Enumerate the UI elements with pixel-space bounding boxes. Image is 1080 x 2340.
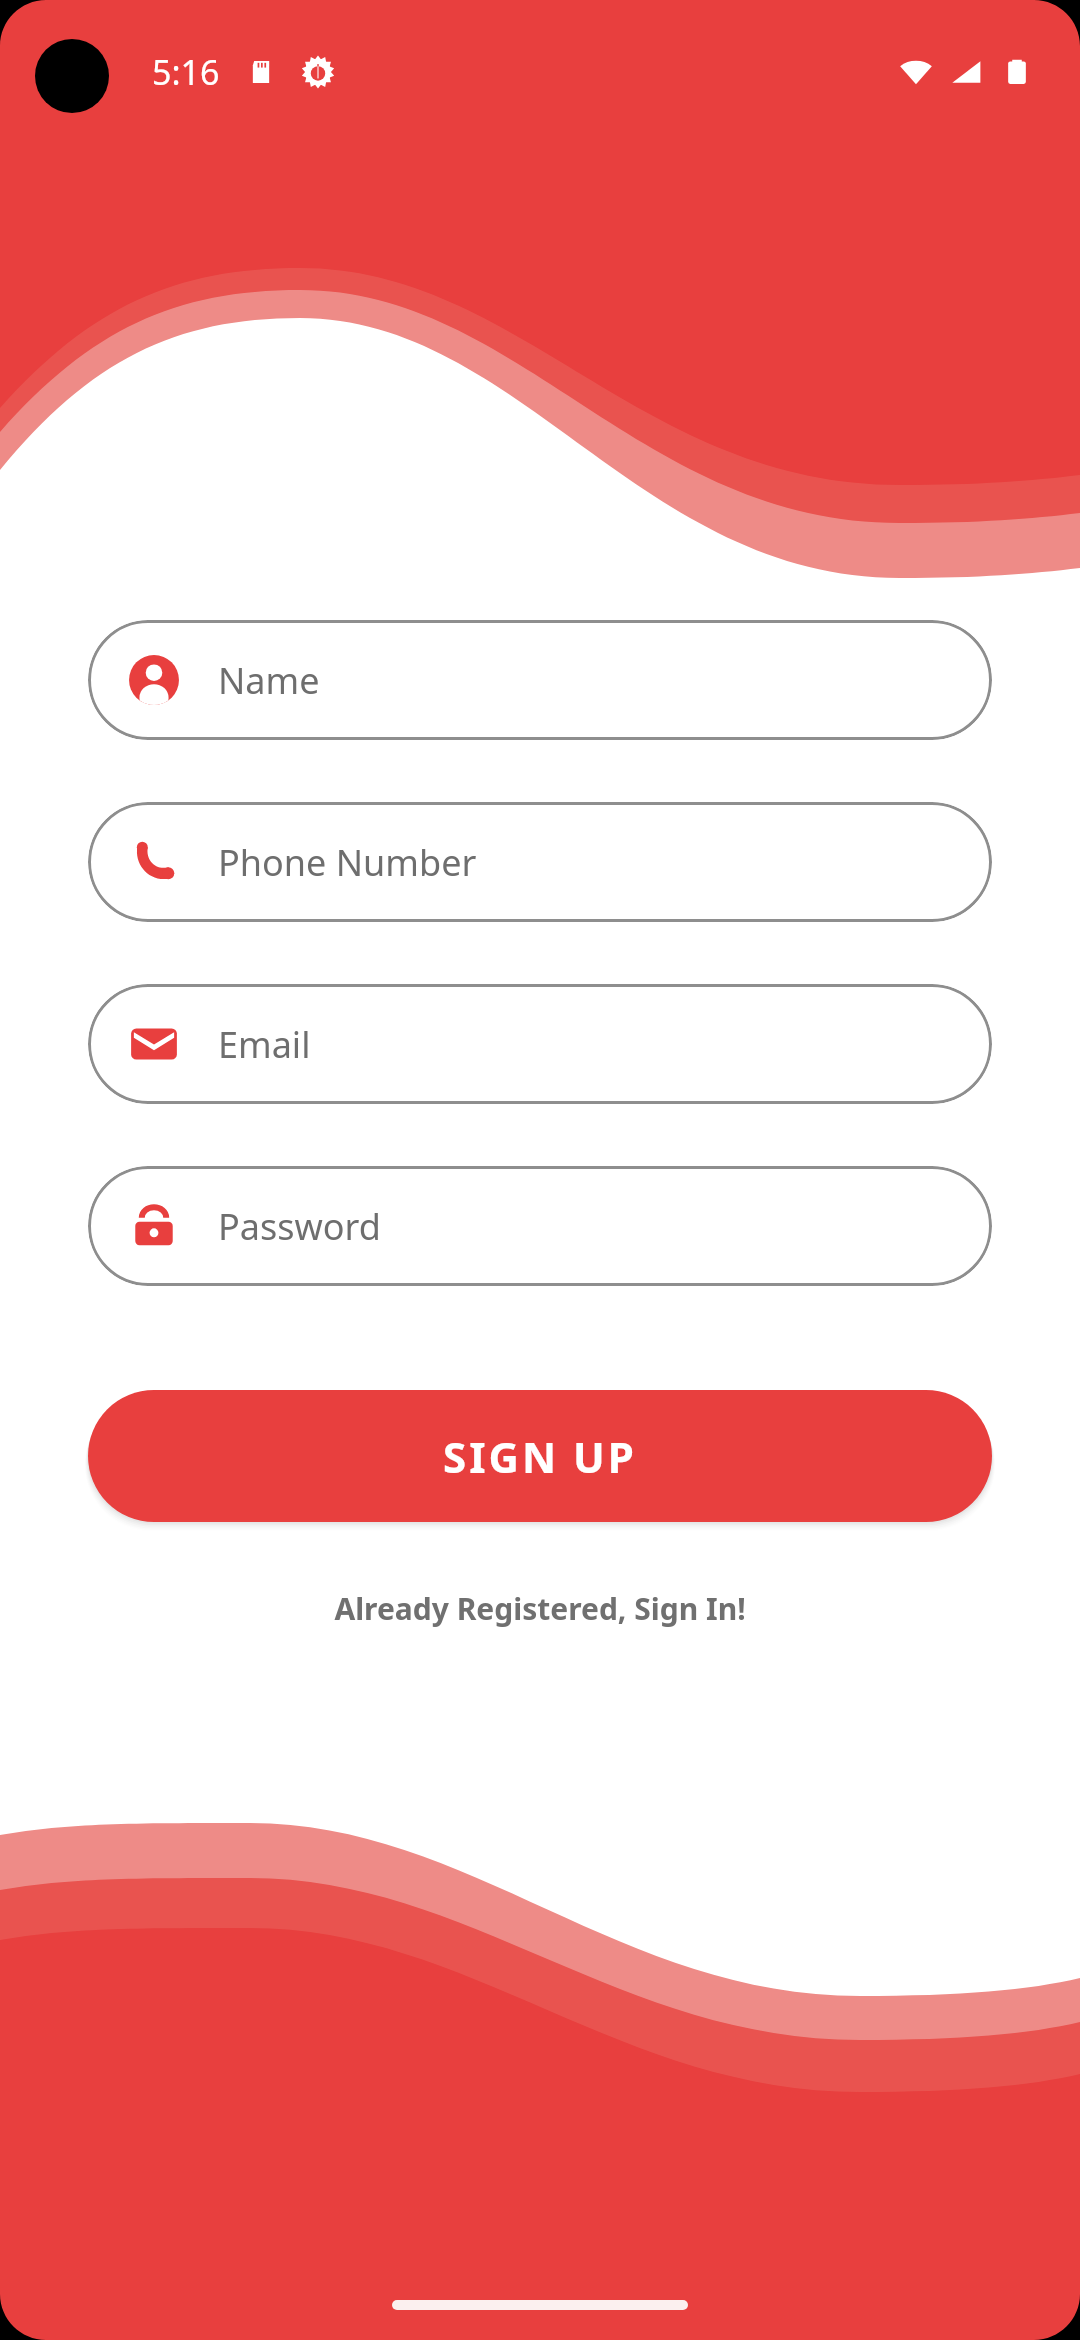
staticText: Already Registered, Sign In!	[334, 1588, 746, 1629]
staticText: 5:16	[152, 49, 220, 95]
staticText: Password	[218, 1202, 381, 1251]
staticText: Phone Number	[218, 838, 477, 887]
staticText: Name	[218, 656, 320, 705]
button[interactable]: Already Registered, Sign In!	[88, 1580, 992, 1637]
button[interactable]: SIGN UP	[88, 1390, 992, 1522]
button[interactable]: Phone Number field	[88, 802, 992, 922]
staticText: Email	[218, 1020, 311, 1069]
staticText: SIGN UP	[443, 1428, 637, 1485]
button[interactable]: Password field	[88, 1166, 992, 1286]
button[interactable]: Email field	[88, 984, 992, 1104]
button[interactable]: Name field	[88, 620, 992, 740]
